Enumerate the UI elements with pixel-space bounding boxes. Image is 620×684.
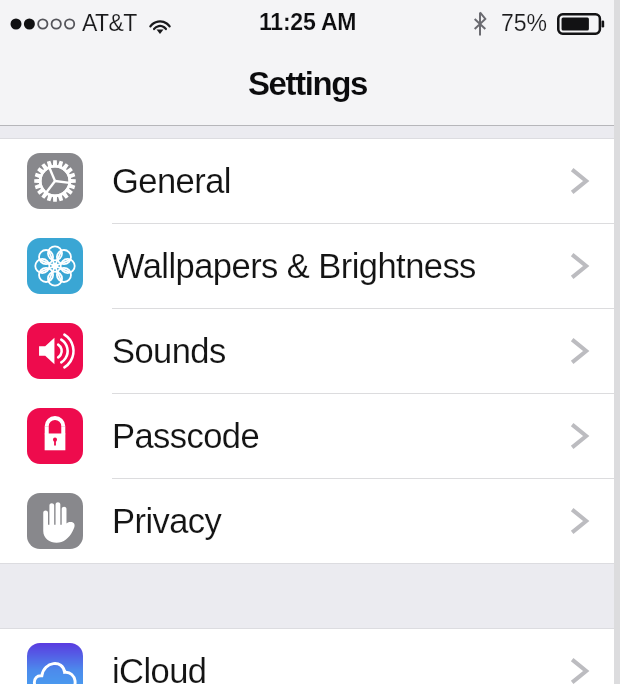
staticText: 11:25 AM: [259, 9, 357, 35]
button[interactable]: iCloud: [0, 629, 620, 684]
staticText: Privacy: [112, 502, 222, 541]
button[interactable]: Sounds: [0, 309, 620, 393]
other: Open Sounds: [570, 338, 588, 364]
staticText: Settings: [248, 65, 367, 102]
other: Open Privacy: [570, 508, 588, 534]
other: Signal strength: [10, 16, 72, 32]
staticText: 75%: [501, 10, 548, 36]
staticText: AT&T: [82, 10, 137, 36]
other: Wi-Fi: [148, 16, 172, 34]
staticText: Sounds: [112, 332, 226, 371]
staticText: Passcode: [112, 417, 260, 456]
button[interactable]: Privacy: [0, 479, 620, 563]
other: Open Passcode: [570, 423, 588, 449]
staticText: Wallpapers & Brightness: [112, 247, 476, 286]
staticText: General: [112, 162, 231, 201]
other: Open iCloud: [570, 658, 588, 684]
other: Open General: [570, 168, 588, 194]
staticText: iCloud: [112, 652, 207, 684]
button[interactable]: Wallpapers & Brightness: [0, 224, 620, 308]
button[interactable]: Passcode: [0, 394, 620, 478]
other: Open Wallpapers & Brightness: [570, 253, 588, 279]
button[interactable]: General: [0, 139, 620, 223]
